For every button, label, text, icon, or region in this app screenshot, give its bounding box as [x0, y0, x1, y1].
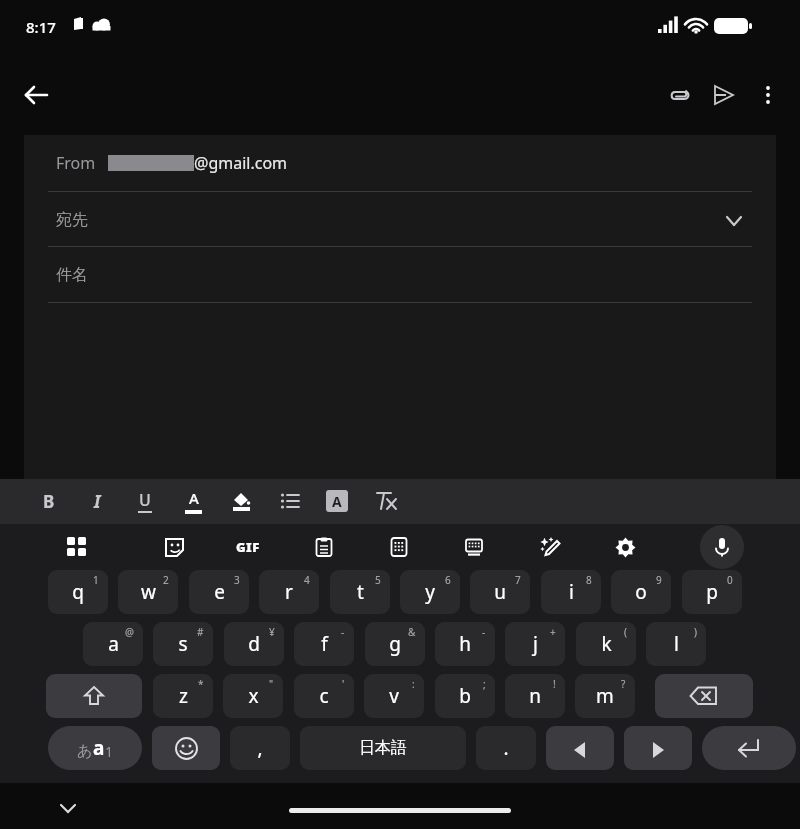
staticText: ¥ — [269, 625, 275, 639]
button[interactable]: Backspace — [655, 674, 753, 718]
button[interactable]: m — [575, 674, 635, 718]
button[interactable]: s — [153, 622, 213, 666]
staticText: A — [332, 492, 342, 511]
button[interactable]: Clear formatting — [365, 480, 407, 522]
button[interactable]: g — [365, 622, 425, 666]
button[interactable]: t — [330, 570, 390, 614]
staticText: 1 — [105, 742, 114, 761]
staticText: & — [408, 625, 416, 639]
button[interactable]: Back — [12, 71, 60, 119]
staticText: 件名 — [56, 265, 88, 285]
staticText: B — [43, 490, 55, 513]
button[interactable]: Enter — [702, 726, 796, 770]
button[interactable]: Attach file — [656, 71, 704, 119]
staticText: q — [72, 579, 84, 605]
button[interactable]: Stickers — [152, 525, 196, 569]
staticText: 0 — [727, 573, 733, 587]
staticText: @gmail.com — [194, 152, 288, 174]
staticText: - — [341, 625, 345, 639]
button[interactable]: Highlight color — [220, 480, 262, 522]
staticText: d — [248, 631, 260, 657]
staticText: U — [139, 489, 151, 511]
staticText: o — [635, 579, 647, 605]
button[interactable]: One-handed — [452, 525, 496, 569]
staticText: 8 — [586, 573, 592, 587]
button[interactable]: . — [476, 726, 536, 770]
button[interactable]: From — [56, 135, 744, 191]
button[interactable]: あ — [48, 726, 142, 770]
staticText: 宛先 — [56, 210, 88, 230]
button[interactable]: Italic — [76, 480, 118, 522]
button[interactable]: h — [435, 622, 495, 666]
staticText: n — [529, 683, 541, 709]
button[interactable]: d — [224, 622, 284, 666]
button[interactable]: q — [48, 570, 108, 614]
button[interactable]: Settings — [603, 525, 647, 569]
button[interactable]: More options — [744, 71, 792, 119]
button[interactable]: Bulleted list — [269, 480, 311, 522]
button[interactable]: a — [83, 622, 143, 666]
button[interactable]: Hide keyboard — [46, 786, 90, 829]
button[interactable]: 日本語 — [300, 726, 466, 770]
button[interactable]: e — [189, 570, 249, 614]
staticText: x — [248, 683, 259, 709]
button[interactable]: Voice input — [700, 525, 744, 569]
button[interactable]: Magic compose — [528, 525, 572, 569]
button[interactable]: Clipboard — [302, 525, 346, 569]
staticText: 8:17 — [26, 17, 56, 37]
staticText: f — [321, 631, 328, 657]
staticText: * — [198, 677, 204, 691]
button[interactable]: v — [364, 674, 424, 718]
button[interactable]: Toolbox — [55, 525, 99, 569]
staticText: y — [425, 579, 435, 605]
staticText: z — [179, 683, 188, 709]
button[interactable]: j — [505, 622, 565, 666]
button[interactable]: x — [223, 674, 283, 718]
staticText: : — [412, 677, 415, 691]
button[interactable]: 件名 — [56, 247, 744, 302]
button[interactable]: GIF — [226, 525, 270, 569]
staticText: # — [197, 625, 204, 639]
staticText: w — [141, 579, 156, 605]
staticText: I — [94, 490, 101, 513]
button[interactable]: y — [400, 570, 460, 614]
button[interactable]: Emoji — [152, 726, 220, 770]
button[interactable]: p — [682, 570, 742, 614]
button[interactable]: Bold — [28, 480, 70, 522]
button[interactable]: Send — [700, 71, 748, 119]
button[interactable]: , — [230, 726, 290, 770]
staticText: u — [494, 579, 506, 605]
button[interactable]: z — [153, 674, 213, 718]
button[interactable]: Move cursor left — [546, 726, 614, 770]
button[interactable]: 宛先 — [56, 192, 744, 247]
button[interactable]: o — [611, 570, 671, 614]
staticText: ? — [621, 677, 626, 691]
staticText: j — [533, 631, 538, 657]
button[interactable]: Shift — [46, 674, 142, 718]
button[interactable]: Font — [316, 480, 358, 522]
button[interactable]: f — [294, 622, 354, 666]
staticText: , — [257, 735, 263, 761]
staticText: 日本語 — [359, 738, 407, 758]
button[interactable]: w — [118, 570, 178, 614]
staticText: c — [319, 683, 329, 709]
staticText: v — [389, 683, 399, 709]
button[interactable]: l — [646, 622, 706, 666]
button[interactable]: c — [294, 674, 354, 718]
button[interactable]: u — [470, 570, 530, 614]
button[interactable]: k — [576, 622, 636, 666]
staticText: ! — [553, 677, 556, 691]
staticText: p — [706, 579, 718, 605]
button[interactable]: Move cursor right — [624, 726, 692, 770]
button[interactable]: r — [259, 570, 319, 614]
staticText: A — [189, 488, 199, 508]
button[interactable]: Underline — [124, 480, 166, 522]
staticText: - — [482, 625, 486, 639]
button[interactable]: i — [541, 570, 601, 614]
staticText: 7 — [515, 573, 521, 587]
button[interactable]: Numbers — [377, 525, 421, 569]
button[interactable]: Text color — [172, 480, 214, 522]
button[interactable]: n — [505, 674, 565, 718]
button[interactable]: b — [435, 674, 495, 718]
